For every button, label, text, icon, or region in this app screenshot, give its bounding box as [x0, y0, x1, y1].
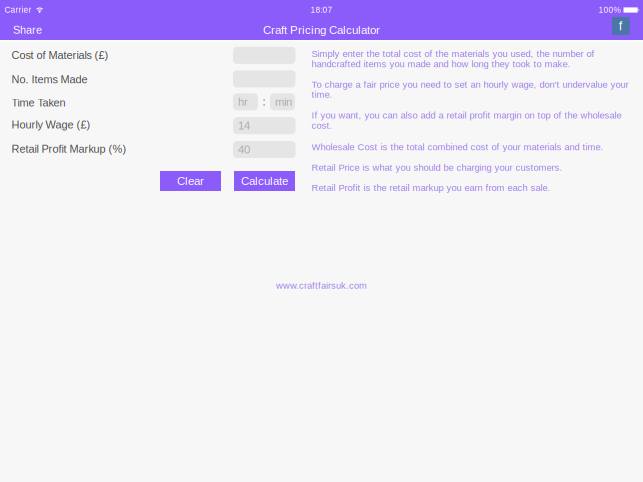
staticText: :	[262, 96, 265, 108]
staticText: Cost of Materials (£)	[11, 49, 108, 61]
staticText: Retail Profit Markup (%)	[11, 143, 126, 155]
staticText: No. Items Made	[11, 73, 87, 86]
button[interactable]: Share on Facebook	[612, 17, 630, 35]
staticText: hr	[238, 95, 248, 108]
staticText: Craft Pricing Calculator	[263, 24, 380, 36]
button[interactable]: Hours	[233, 93, 258, 110]
staticText: Retail Price is what you should be charg…	[311, 162, 562, 173]
staticText: f	[619, 19, 623, 33]
staticText: If you want, you can also add a retail p…	[311, 110, 621, 120]
staticText: Share	[13, 24, 42, 36]
staticText: Clear	[177, 175, 204, 187]
button[interactable]: Hourly Wage	[233, 117, 295, 134]
staticText: handcrafted items you made and how long …	[311, 59, 570, 69]
staticText: Simply enter the total cost of the mater…	[311, 48, 594, 59]
staticText: Carrier	[4, 5, 31, 15]
button[interactable]: Share	[5, 20, 50, 40]
staticText: cost.	[311, 120, 332, 131]
staticText: 100%	[598, 5, 620, 15]
staticText: Retail Profit is the retail markup you e…	[311, 182, 550, 193]
staticText: Time Taken	[11, 97, 65, 109]
button[interactable]: Minutes	[270, 93, 295, 110]
staticText: To charge a fair price you need to set a…	[311, 79, 628, 90]
staticText: time.	[311, 89, 332, 100]
staticText: 14	[238, 119, 250, 132]
button[interactable]: Calculate	[234, 171, 295, 191]
staticText: min	[275, 95, 292, 108]
button[interactable]: Retail Profit Markup	[233, 141, 295, 158]
staticText: Calculate	[241, 175, 288, 187]
button[interactable]: Clear	[160, 171, 221, 191]
staticText: Wholesale Cost is the total combined cos…	[311, 142, 603, 152]
staticText: www.craftfairsuk.com	[276, 280, 367, 291]
staticText: Hourly Wage (£)	[11, 119, 90, 131]
staticText: 18:07	[310, 5, 332, 15]
staticText: 40	[238, 143, 250, 156]
